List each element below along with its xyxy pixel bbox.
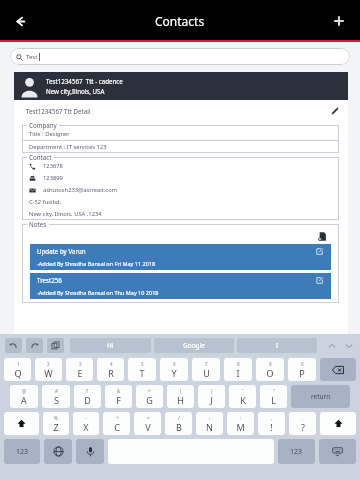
button[interactable]: Edit note — [314, 246, 324, 256]
staticText: ashutosh233@astreait.com — [43, 186, 118, 194]
staticText: New city,Ilinois, USA — [46, 87, 105, 95]
button[interactable]: % — [43, 412, 69, 435]
button[interactable]: Shift — [4, 412, 39, 435]
staticText: ) — [211, 388, 213, 394]
button[interactable]: 7 — [192, 358, 220, 381]
staticText: C — [114, 421, 120, 433]
button[interactable]: Trest256 — [30, 273, 331, 299]
button[interactable]: I — [237, 338, 317, 353]
button[interactable]: ) — [198, 385, 225, 408]
staticText: V — [145, 421, 151, 433]
button[interactable]: @ — [10, 385, 38, 408]
button[interactable]: 5 — [128, 358, 156, 381]
staticText: Contact — [29, 153, 52, 161]
button[interactable]: Hide keyboard — [319, 439, 356, 464]
staticText: -Added By Shradha Bansal on Fri May 11 2… — [37, 260, 156, 267]
staticText: I — [236, 367, 240, 379]
button[interactable]: Update by Varun — [30, 244, 331, 270]
staticText: O — [266, 367, 274, 379]
button[interactable]: Previous — [323, 337, 340, 354]
button[interactable]: " — [260, 385, 287, 408]
button[interactable]: Google — [154, 338, 234, 353]
staticText: -Added By Shradha Bansal on Thu May 10 2… — [37, 289, 159, 296]
button[interactable]: - — [73, 412, 99, 435]
button[interactable]: 3 — [66, 358, 93, 381]
staticText: K — [240, 394, 246, 406]
button[interactable]: = — [134, 412, 161, 435]
button[interactable]: 4 — [97, 358, 124, 381]
staticText: 6 — [173, 361, 176, 367]
staticText: . — [302, 415, 304, 421]
staticText: * — [148, 388, 151, 394]
staticText: ' — [242, 388, 244, 394]
button[interactable]: Hi — [70, 338, 151, 353]
staticText: return — [311, 392, 331, 401]
staticText: 7 — [205, 361, 208, 367]
button[interactable]: Next — [340, 337, 357, 354]
staticText: G — [146, 394, 153, 406]
button[interactable]: 6 — [160, 358, 188, 381]
staticText: M — [236, 421, 245, 433]
staticText: U — [203, 367, 210, 379]
button[interactable]: Add note — [315, 229, 329, 243]
button[interactable]: Test — [10, 48, 350, 65]
staticText: / — [178, 415, 180, 421]
staticText: Company — [29, 121, 57, 129]
button[interactable]: 0 — [288, 358, 316, 381]
button[interactable]: # — [42, 385, 70, 408]
staticText: Update by Varun — [37, 247, 86, 255]
staticText: L — [271, 394, 276, 406]
staticText: 4 — [110, 361, 113, 367]
button[interactable]: Shift — [320, 412, 356, 435]
button[interactable]: copy — [47, 338, 64, 353]
button[interactable]: Add contact — [324, 6, 354, 36]
button[interactable]: 1 — [4, 358, 31, 381]
button[interactable]: Language — [44, 439, 72, 464]
staticText: : — [240, 415, 242, 421]
button[interactable]: / — [165, 412, 192, 435]
button[interactable]: : — [227, 412, 254, 435]
button[interactable]: ' — [229, 385, 256, 408]
button[interactable]: + — [103, 412, 130, 435]
staticText: 1 — [17, 361, 20, 367]
button[interactable]: * — [136, 385, 163, 408]
button[interactable]: 123 — [278, 439, 315, 464]
staticText: Google — [183, 341, 205, 350]
button[interactable]: Edit contact — [328, 104, 342, 118]
staticText: Trest256 — [37, 276, 62, 284]
staticText: ! — [270, 421, 273, 433]
staticText: % — [54, 415, 58, 421]
button[interactable]: 9 — [256, 358, 284, 381]
button[interactable]: ₹ — [74, 385, 101, 408]
staticText: 0 — [301, 361, 304, 367]
button[interactable]: Test1234567 Ttt - cadence — [14, 72, 348, 100]
staticText: Title : Designer — [29, 130, 70, 138]
staticText: Test — [26, 53, 38, 61]
staticText: ; — [209, 415, 211, 421]
button[interactable]: & — [105, 385, 132, 408]
button[interactable]: 2 — [35, 358, 62, 381]
button[interactable]: ; — [196, 412, 223, 435]
button[interactable]: Back — [5, 6, 35, 36]
staticText: C-52 fusibd, — [29, 198, 62, 206]
button[interactable]: 8 — [224, 358, 252, 381]
staticText: W — [44, 367, 53, 379]
button[interactable]: 123 — [4, 439, 40, 464]
staticText: 2 — [47, 361, 50, 367]
staticText: + — [116, 415, 119, 421]
staticText: 3 — [79, 361, 82, 367]
staticText: 5 — [141, 361, 144, 367]
button[interactable]: return — [291, 385, 350, 408]
button[interactable]: Edit note — [314, 275, 324, 285]
button[interactable]: Backspace — [320, 358, 356, 381]
button[interactable]: ( — [167, 385, 194, 408]
button[interactable]: . — [289, 412, 316, 435]
button[interactable]: redo — [26, 338, 43, 353]
button[interactable]: , — [258, 412, 285, 435]
button[interactable]: undo — [5, 338, 22, 353]
staticText: T — [139, 367, 145, 379]
button[interactable]: Voice input — [76, 439, 104, 464]
staticText: Contacts — [155, 13, 205, 29]
staticText: ? — [301, 421, 305, 433]
